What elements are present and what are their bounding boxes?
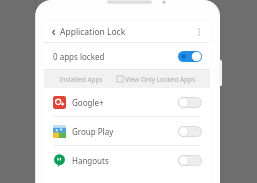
staticText: Google+ <box>72 97 104 108</box>
button[interactable]: Hangouts <box>44 146 210 174</box>
staticText: Application Lock <box>60 26 126 38</box>
button[interactable]: Back <box>49 28 58 37</box>
button[interactable]: 0 apps locked <box>44 43 210 69</box>
staticText: View Only Locked Apps <box>125 75 196 84</box>
staticText: Hangouts <box>72 155 109 166</box>
button[interactable]: Back <box>44 22 210 42</box>
button[interactable]: Google+ <box>44 88 210 116</box>
button[interactable]: Installed Apps <box>44 70 117 88</box>
button[interactable]: More options <box>194 27 204 37</box>
button[interactable]: Toggle off <box>178 97 202 108</box>
button[interactable]: View Only Locked Apps <box>117 70 210 88</box>
button[interactable]: Group Play <box>44 117 210 145</box>
button[interactable]: Toggle off <box>178 155 202 166</box>
button[interactable]: Toggle off <box>178 126 202 137</box>
staticText: Installed Apps <box>59 75 103 84</box>
staticText: 0 apps locked <box>53 51 105 62</box>
staticText: Group Play <box>72 126 114 137</box>
button[interactable]: Toggle on <box>178 51 202 62</box>
